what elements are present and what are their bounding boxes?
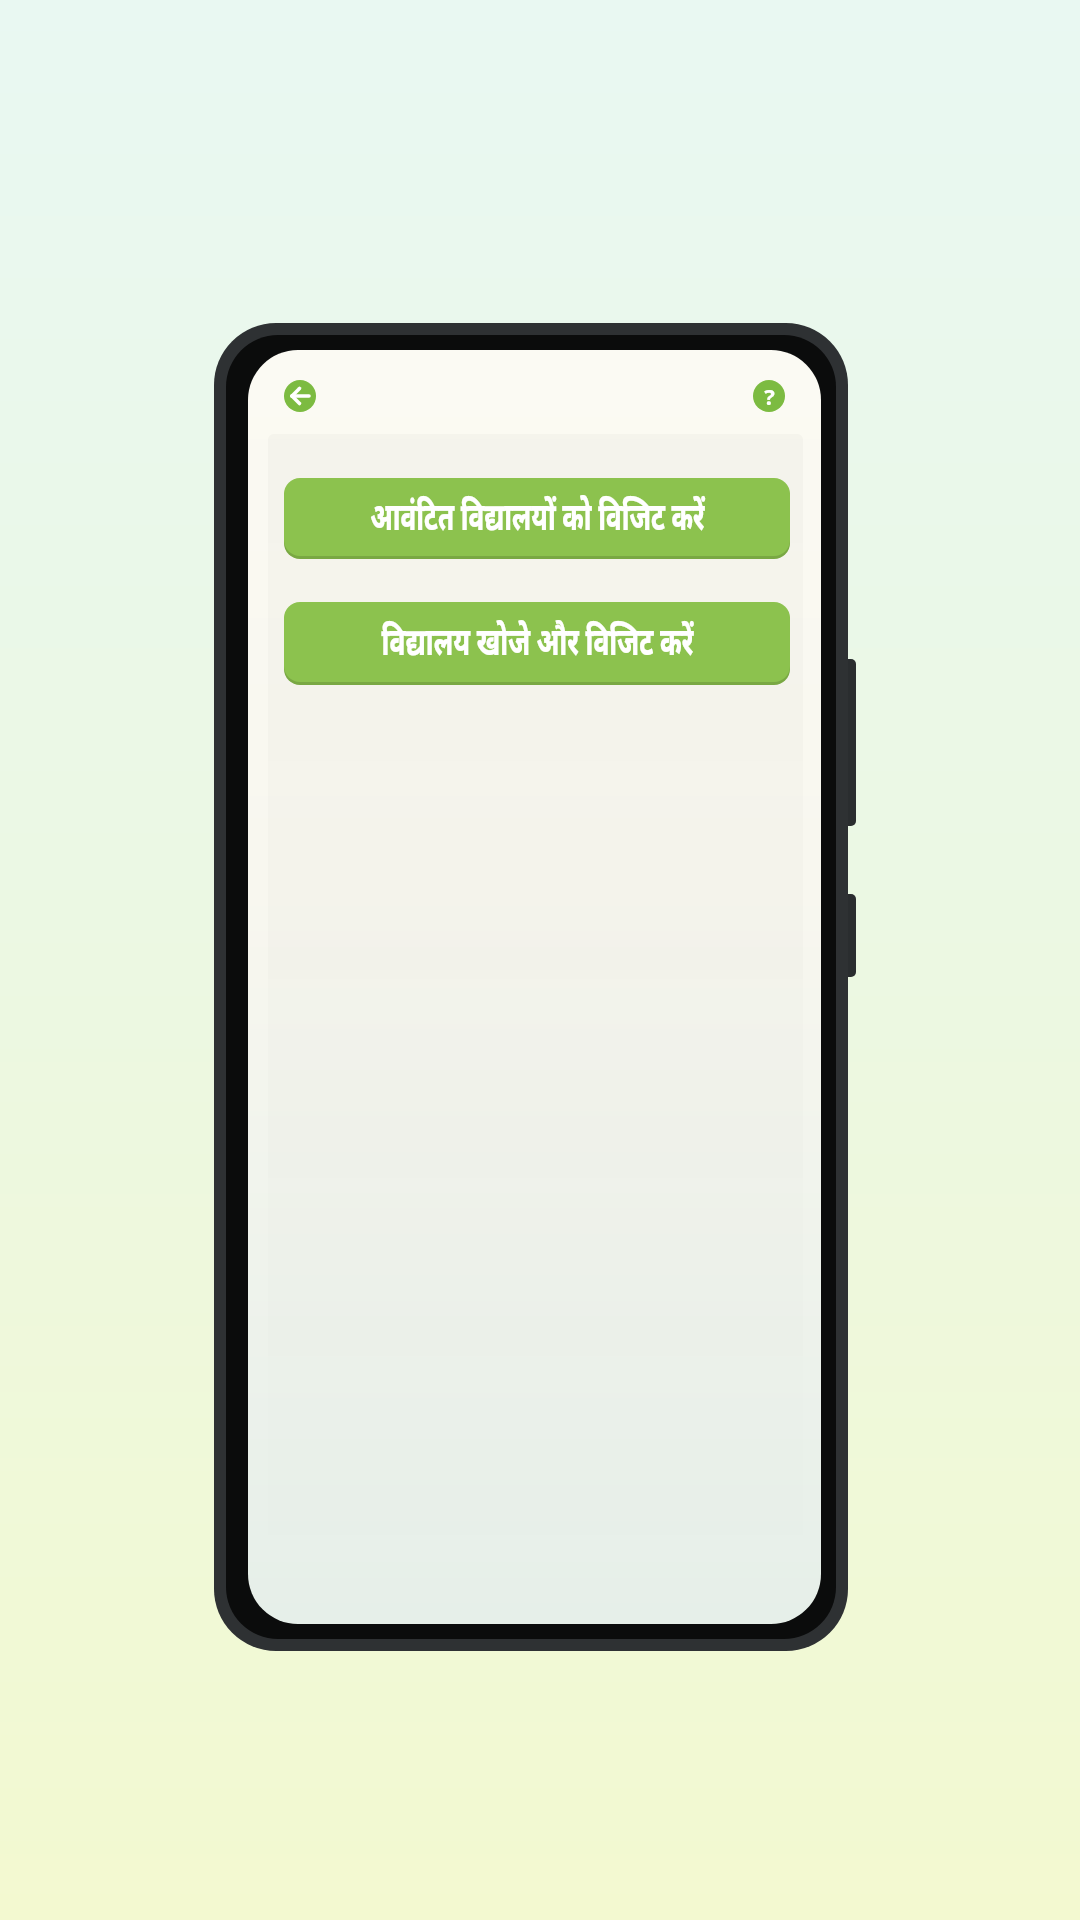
button[interactable]: आवंटित विद्यालयों को विजिट करें bbox=[284, 478, 790, 556]
button[interactable]: विद्यालय खोजे और विजिट करें bbox=[284, 602, 790, 682]
staticText: ? bbox=[764, 381, 775, 411]
staticText: आवंटित विद्यालयों को विजिट करें bbox=[370, 489, 705, 541]
staticText: विद्यालय खोजे और विजिट करें bbox=[381, 614, 693, 666]
button[interactable]: ? bbox=[753, 380, 785, 412]
button[interactable] bbox=[284, 380, 316, 412]
